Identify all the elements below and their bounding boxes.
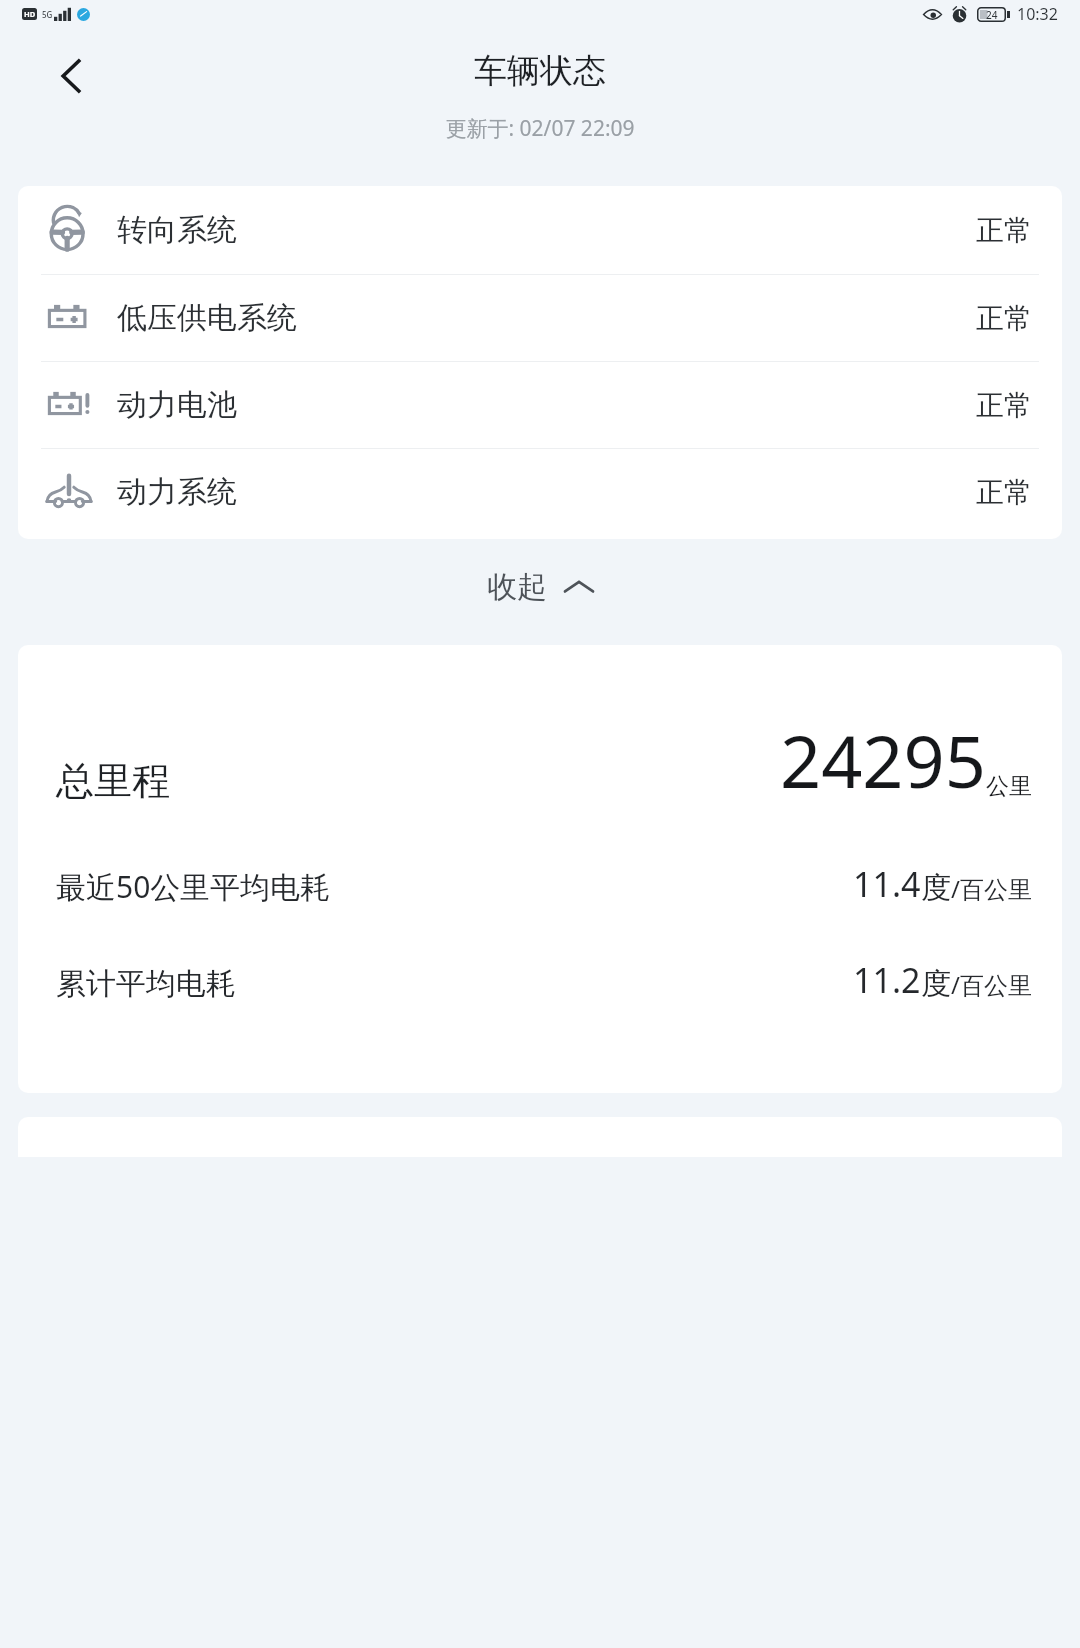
staticText: 总里程 [56,757,170,805]
staticText: HD [24,9,36,19]
staticText: 正常 [976,388,1032,423]
button[interactable]: 低压供电系统 [18,275,1062,361]
button[interactable]: 收起 [0,539,1080,635]
button[interactable]: 转向系统 [18,186,1062,274]
staticText: 转向系统 [117,211,237,249]
staticText: 最近50公里平均电耗 [56,866,331,907]
staticText: 5G [42,9,53,20]
staticText: 正常 [976,213,1032,248]
staticText: 度 [921,965,951,1003]
staticText: /百公里 [951,872,1032,905]
staticText: 累计平均电耗 [56,965,236,1003]
staticText: 24 [986,8,998,22]
staticText: 动力电池 [117,386,237,424]
staticText: 公里 [986,772,1032,801]
staticText: 11.2 [853,957,921,1003]
staticText: /百公里 [951,968,1032,1001]
staticText: 11.4 [853,861,921,907]
staticText: 正常 [976,475,1032,510]
staticText: 更新于: 02/07 22:09 [445,114,635,143]
staticText: 度 [921,869,951,907]
staticText: 10:32 [1017,3,1058,25]
staticText: 24295 [780,711,986,809]
button[interactable]: 动力系统 [18,449,1062,535]
staticText: 正常 [976,301,1032,336]
staticText: 车辆状态 [474,50,606,92]
staticText: 收起 [487,568,547,606]
staticText: 低压供电系统 [117,299,297,337]
button[interactable]: 返回 [44,48,100,104]
staticText: 动力系统 [117,473,237,511]
button[interactable]: 动力电池 [18,362,1062,448]
